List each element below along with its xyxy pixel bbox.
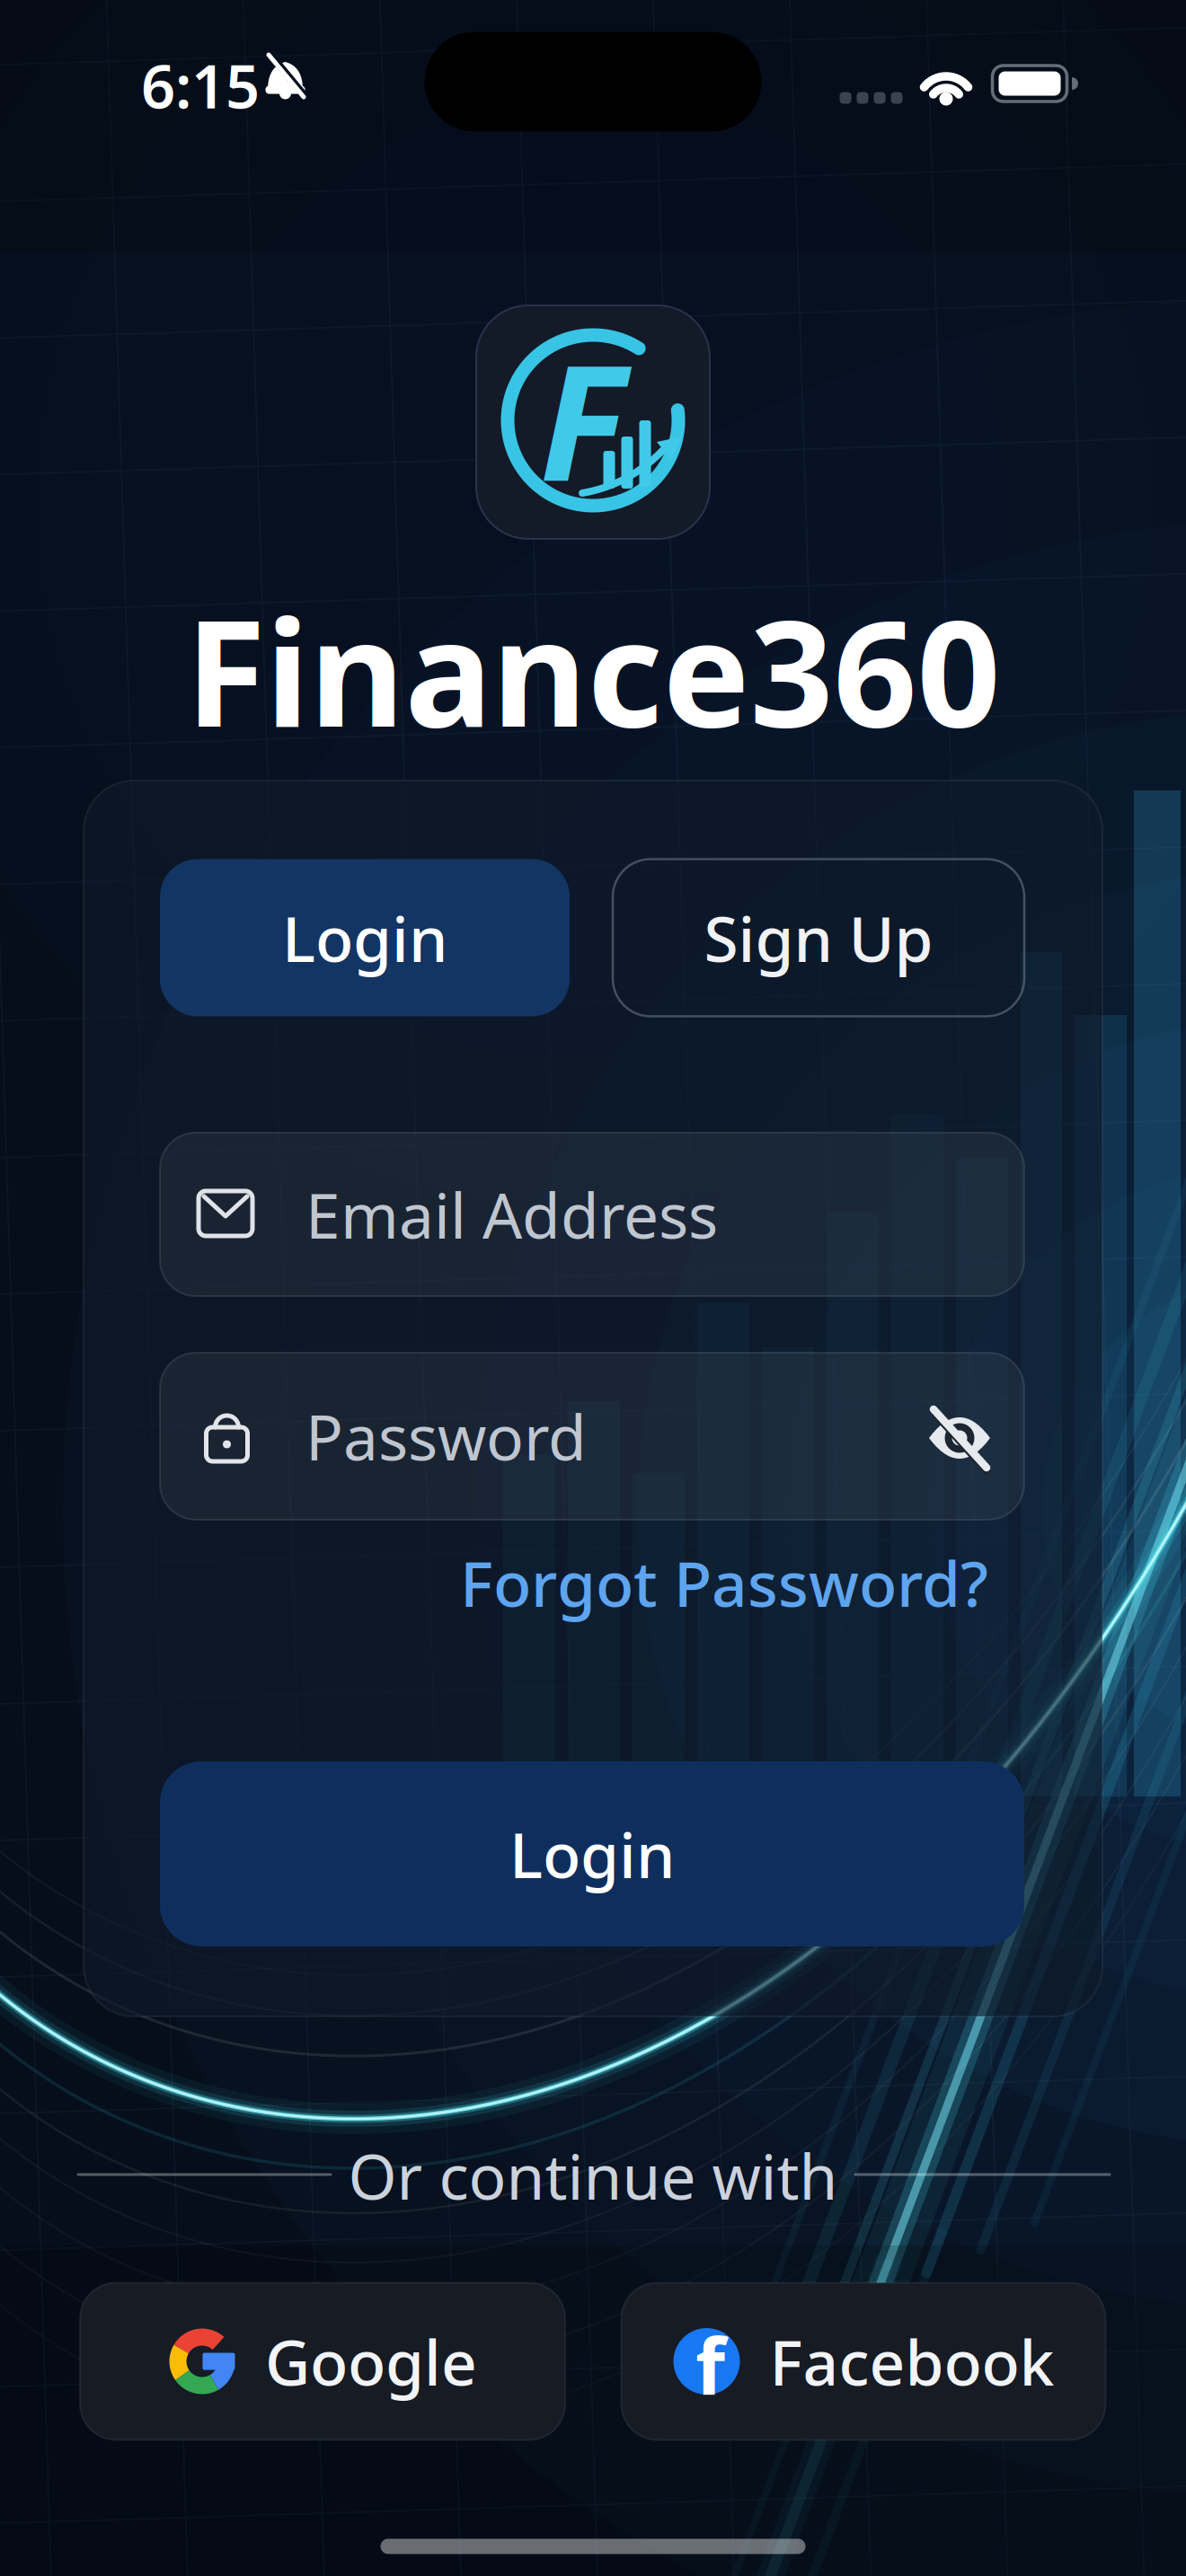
staticText: 6:15 (141, 46, 260, 125)
staticText: Email Address (305, 1173, 718, 1256)
button[interactable]: Login (160, 1761, 1024, 1946)
staticText: Or continue with (348, 2134, 838, 2217)
button[interactable]: Login (160, 859, 570, 1016)
staticText: Forgot Password? (460, 1541, 988, 1624)
staticText: Password (305, 1395, 587, 1478)
staticText: Login (282, 896, 447, 979)
button[interactable]: f (621, 2283, 1106, 2440)
button[interactable]: Google (80, 2283, 565, 2440)
staticText: Login (509, 1813, 675, 1895)
staticText: Finance360 (186, 573, 1000, 767)
staticText: F (540, 312, 625, 525)
button[interactable]: Sign Up (613, 859, 1024, 1016)
staticText: Facebook (770, 2320, 1054, 2403)
staticText: Sign Up (704, 896, 933, 979)
button[interactable]: Show password (910, 1387, 1009, 1486)
staticText: Google (265, 2320, 477, 2403)
button[interactable]: Forgot Password? (359, 1551, 988, 1614)
staticText: f (695, 2314, 725, 2416)
